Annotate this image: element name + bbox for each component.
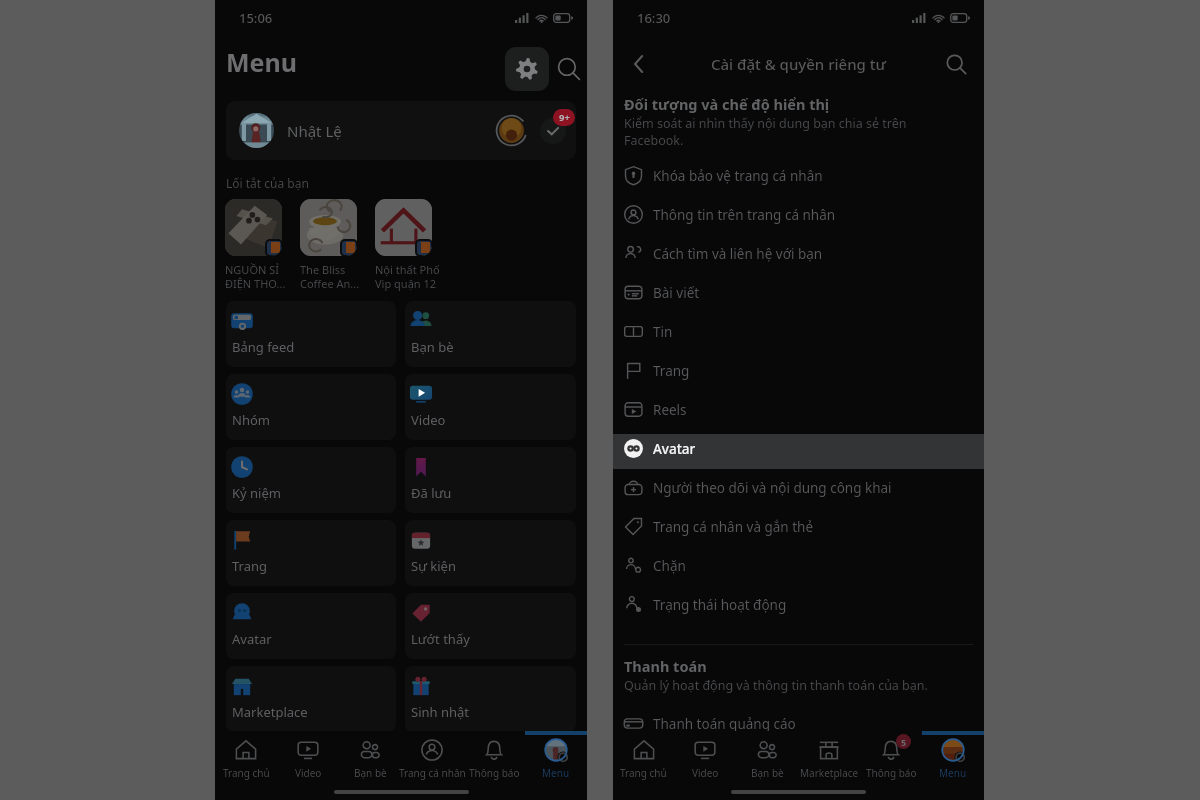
- button[interactable]: Marketplace: [798, 735, 860, 783]
- staticText: Menu: [226, 45, 298, 79]
- button[interactable]: Search: [551, 51, 587, 87]
- button[interactable]: Chặn: [613, 546, 984, 585]
- staticText: Thông báo: [866, 766, 917, 780]
- staticText: Thông báo: [469, 766, 520, 780]
- staticText: 5: [901, 736, 907, 748]
- staticText: Trang cá nhân và gắn thẻ: [653, 518, 814, 536]
- staticText: Reels: [653, 401, 687, 419]
- staticText: Thông tin trên trang cá nhân: [653, 206, 836, 224]
- staticText: Kiểm soát ai nhìn thấy nội dung bạn chia…: [624, 115, 924, 148]
- staticText: 16:30: [637, 9, 671, 27]
- button[interactable]: Thông báo: [860, 735, 922, 783]
- button[interactable]: Video: [277, 735, 339, 783]
- button[interactable]: Kỷ niệm: [226, 447, 396, 513]
- staticText: Thanh toán: [624, 656, 707, 676]
- button[interactable]: Thông tin trên trang cá nhân: [613, 195, 984, 234]
- staticText: Trang chủ: [223, 766, 270, 780]
- button[interactable]: Trang cá nhân: [401, 735, 463, 783]
- button[interactable]: Avatar: [613, 429, 984, 468]
- button[interactable]: Video: [405, 374, 576, 440]
- button[interactable]: Video: [674, 735, 736, 783]
- staticText: Cách tìm và liên hệ với bạn: [653, 245, 823, 263]
- staticText: Menu: [542, 766, 570, 780]
- staticText: Bảng feed: [232, 338, 295, 356]
- button[interactable]: Bạn bè: [405, 301, 576, 367]
- staticText: Video: [692, 766, 719, 780]
- button[interactable]: Settings: [505, 47, 549, 91]
- staticText: Chặn: [653, 557, 686, 575]
- staticText: Menu: [939, 766, 967, 780]
- staticText: Bạn bè: [354, 766, 387, 780]
- staticText: Avatar: [653, 440, 696, 458]
- button[interactable]: Sự kiện: [405, 520, 576, 586]
- staticText: Bài viết: [653, 284, 700, 302]
- button[interactable]: Nhật Lệ: [226, 101, 576, 160]
- staticText: Tin: [653, 323, 673, 341]
- button[interactable]: Nhóm: [226, 374, 396, 440]
- button[interactable]: Người theo dõi và nội dung công khai: [613, 468, 984, 507]
- staticText: Đối tượng và chế độ hiển thị: [624, 94, 830, 114]
- staticText: 9+: [559, 111, 570, 124]
- staticText: Khóa bảo vệ trang cá nhân: [653, 167, 823, 185]
- button[interactable]: Search: [938, 46, 974, 82]
- staticText: Lướt thấy: [411, 630, 470, 648]
- button[interactable]: NGUỒN SỈ ĐIỆN THO...: [225, 199, 295, 291]
- staticText: Đã lưu: [411, 484, 452, 502]
- staticText: The Bliss Coffee An...: [300, 262, 360, 291]
- staticText: Trang chủ: [620, 766, 667, 780]
- staticText: Bạn bè: [751, 766, 784, 780]
- button[interactable]: Back: [621, 46, 657, 82]
- button[interactable]: Reels: [613, 390, 984, 429]
- staticText: Cài đặt & quyền riêng tư: [711, 54, 886, 74]
- button[interactable]: Bạn bè: [736, 735, 798, 783]
- button[interactable]: Tin: [613, 312, 984, 351]
- staticText: Người theo dõi và nội dung công khai: [653, 479, 892, 497]
- staticText: Video: [411, 411, 446, 429]
- staticText: Nhóm: [232, 411, 270, 429]
- staticText: Video: [295, 766, 322, 780]
- button[interactable]: Avatar: [226, 593, 396, 659]
- staticText: 15:06: [239, 9, 273, 27]
- staticText: Marketplace: [800, 766, 859, 780]
- button[interactable]: Trang cá nhân và gắn thẻ: [613, 507, 984, 546]
- button[interactable]: Trang chủ: [613, 735, 674, 783]
- button[interactable]: The Bliss Coffee An...: [300, 199, 370, 291]
- staticText: Sự kiện: [411, 557, 456, 575]
- button[interactable]: Trang: [226, 520, 396, 586]
- staticText: NGUỒN SỈ ĐIỆN THO...: [225, 262, 286, 291]
- staticText: Lối tắt của bạn: [226, 175, 309, 191]
- button[interactable]: Bài viết: [613, 273, 984, 312]
- staticText: Nội thất Phố Vip quận 12: [375, 262, 440, 291]
- button[interactable]: Sinh nhật: [405, 666, 576, 732]
- button[interactable]: Khóa bảo vệ trang cá nhân: [613, 156, 984, 195]
- staticText: Avatar: [232, 630, 272, 648]
- button[interactable]: Bạn bè: [339, 735, 401, 783]
- staticText: Nhật Lệ: [287, 121, 342, 141]
- staticText: Trang cá nhân: [399, 766, 466, 780]
- button[interactable]: Đã lưu: [405, 447, 576, 513]
- staticText: Trang: [232, 557, 268, 575]
- button[interactable]: Trạng thái hoạt động: [613, 585, 984, 624]
- button[interactable]: Trang: [613, 351, 984, 390]
- button[interactable]: Cách tìm và liên hệ với bạn: [613, 234, 984, 273]
- button[interactable]: Thông báo: [463, 735, 525, 783]
- staticText: Kỷ niệm: [232, 484, 281, 502]
- staticText: Bạn bè: [411, 338, 454, 356]
- staticText: Marketplace: [232, 703, 308, 721]
- staticText: Trạng thái hoạt động: [653, 596, 787, 614]
- button[interactable]: Nội thất Phố Vip quận 12: [375, 199, 445, 291]
- button[interactable]: Menu: [525, 735, 587, 783]
- staticText: Trang: [653, 362, 690, 380]
- button[interactable]: Marketplace: [226, 666, 396, 732]
- button[interactable]: Trang chủ: [215, 735, 277, 783]
- button[interactable]: Thanh toán quảng cáo: [613, 704, 984, 743]
- staticText: Quản lý hoạt động và thông tin thanh toá…: [624, 677, 928, 694]
- staticText: Thanh toán quảng cáo: [653, 715, 796, 733]
- staticText: Sinh nhật: [411, 703, 469, 721]
- button[interactable]: Bảng feed: [226, 301, 396, 367]
- button[interactable]: Menu: [922, 735, 984, 783]
- button[interactable]: Lướt thấy: [405, 593, 576, 659]
